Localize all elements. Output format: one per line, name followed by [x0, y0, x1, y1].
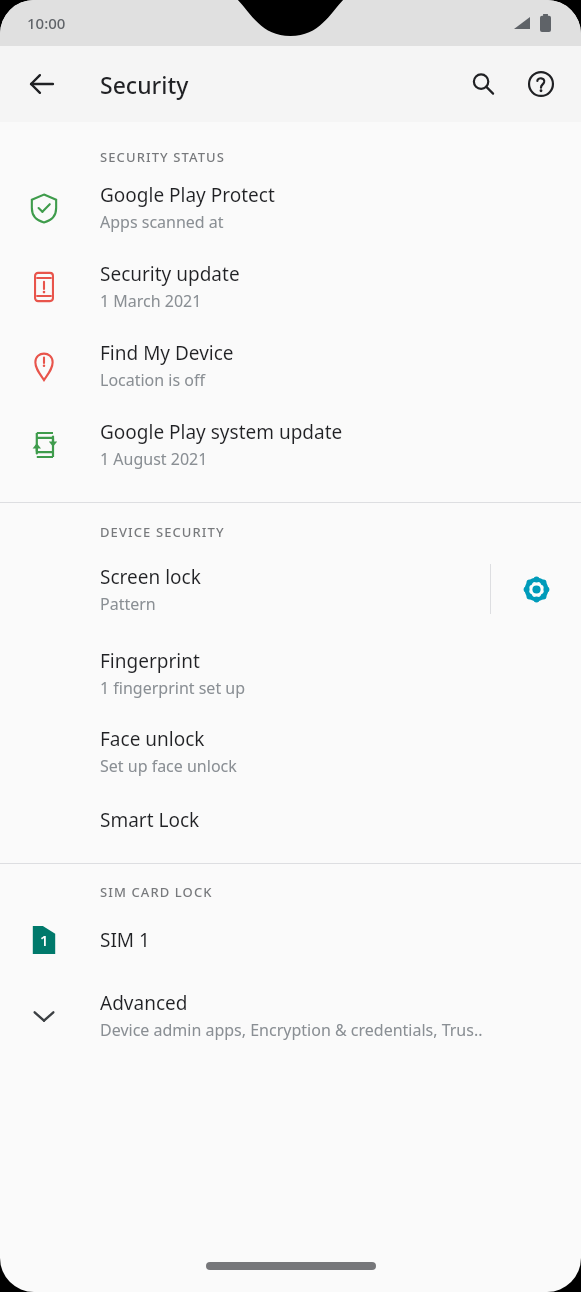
button[interactable]: Google Play system update: [0, 419, 581, 470]
staticText: Smart Lock: [100, 807, 200, 833]
staticText: Pattern: [100, 593, 156, 615]
button[interactable]: Smart Lock: [0, 807, 581, 833]
staticText: Device admin apps, Encryption & credenti…: [100, 1019, 483, 1041]
staticText: Screen lock: [100, 564, 201, 590]
staticText: Security: [100, 69, 189, 100]
staticText: DEVICE SECURITY: [100, 523, 225, 541]
button[interactable]: Security update: [0, 261, 581, 312]
button[interactable]: 1: [0, 918, 581, 962]
staticText: Advanced: [100, 990, 188, 1016]
staticText: SECURITY STATUS: [100, 148, 226, 166]
staticText: 1 March 2021: [100, 290, 202, 312]
staticText: Find My Device: [100, 340, 234, 366]
button[interactable]: Screen lock settings: [491, 557, 581, 621]
button[interactable]: Back: [14, 56, 70, 112]
staticText: Security update: [100, 261, 240, 287]
button[interactable]: Screen lock: [0, 557, 490, 621]
staticText: 10:00: [27, 13, 66, 33]
staticText: 1 August 2021: [100, 448, 208, 470]
staticText: SIM CARD LOCK: [100, 883, 213, 901]
staticText: Fingerprint: [100, 648, 200, 674]
staticText: SIM 1: [100, 927, 150, 953]
button[interactable]: Advanced: [0, 990, 581, 1041]
staticText: Location is off: [100, 369, 205, 391]
button[interactable]: Google Play Protect: [0, 182, 581, 233]
staticText: Face unlock: [100, 726, 205, 752]
staticText: Google Play system update: [100, 419, 343, 445]
staticText: 1: [40, 930, 49, 950]
staticText: Google Play Protect: [100, 182, 275, 208]
button[interactable]: Find My Device: [0, 340, 581, 391]
button[interactable]: Help: [515, 58, 567, 110]
button[interactable]: Fingerprint: [0, 648, 581, 699]
button[interactable]: Face unlock: [0, 726, 581, 777]
staticText: 1 fingerprint set up: [100, 677, 246, 699]
staticText: Apps scanned at: [100, 211, 224, 233]
button[interactable]: Search: [457, 58, 509, 110]
staticText: Set up face unlock: [100, 755, 237, 777]
